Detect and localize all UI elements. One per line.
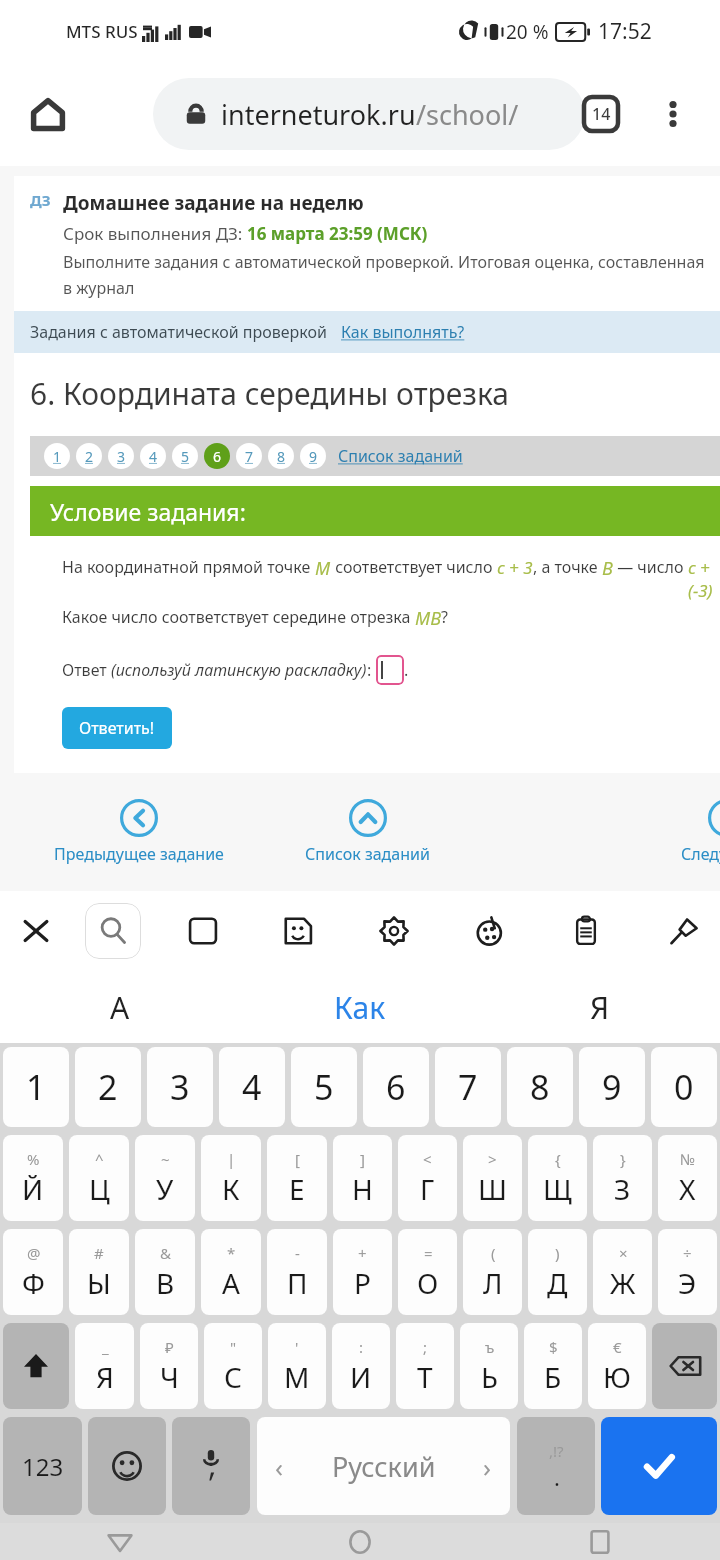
button[interactable]: Recents xyxy=(480,1523,720,1560)
staticText: 17:52 xyxy=(598,17,652,46)
button[interactable]: Как выполнять? xyxy=(341,321,465,343)
staticText: % xyxy=(27,1149,40,1169)
button[interactable]: : xyxy=(332,1323,390,1409)
button[interactable]: interneturok.ru xyxy=(153,78,585,150)
button[interactable]: 5 xyxy=(172,443,198,469)
button[interactable]: ; xyxy=(396,1323,454,1409)
button[interactable]: ) xyxy=(528,1229,587,1315)
button[interactable]: 7 xyxy=(435,1047,501,1127)
staticText: М xyxy=(284,1358,310,1396)
button[interactable]: ъ xyxy=(460,1323,518,1409)
button[interactable]: 1 xyxy=(44,443,70,469)
button[interactable]: Shift xyxy=(3,1323,69,1409)
button[interactable]: Я xyxy=(480,971,720,1043)
button[interactable]: 7 xyxy=(236,443,262,469)
button[interactable]: ^ xyxy=(69,1135,129,1221)
button[interactable]: Settings xyxy=(366,903,422,959)
button[interactable]: Clipboard xyxy=(558,903,614,959)
button[interactable]: Pin xyxy=(655,903,711,959)
button[interactable]: Stickers xyxy=(270,903,326,959)
staticText: А xyxy=(222,1264,240,1302)
button[interactable]: Themes xyxy=(462,903,518,959)
button[interactable]: € xyxy=(588,1323,646,1409)
button[interactable]: 6 xyxy=(363,1047,429,1127)
button[interactable]: Список заданий xyxy=(305,799,430,865)
button[interactable]: # xyxy=(69,1229,129,1315)
button[interactable]: Emoji xyxy=(88,1417,166,1515)
button[interactable]: = xyxy=(398,1229,457,1315)
button[interactable]: + xyxy=(333,1229,392,1315)
staticText: B xyxy=(602,556,613,581)
button[interactable]: × xyxy=(593,1229,652,1315)
button[interactable]: More options xyxy=(646,87,700,141)
button[interactable]: 1 xyxy=(3,1047,69,1127)
button[interactable]: ,!? xyxy=(517,1417,595,1515)
button[interactable]: _ xyxy=(75,1323,134,1409)
button[interactable]: Предыдущее задание xyxy=(54,799,224,865)
button[interactable]: { xyxy=(528,1135,587,1221)
button[interactable]: Следующее xyxy=(681,799,720,865)
staticText: | xyxy=(227,1149,236,1169)
staticText: € xyxy=(613,1337,622,1357)
staticText: 3 xyxy=(117,447,126,466)
button[interactable]: Search xyxy=(85,903,141,959)
staticText: Й xyxy=(22,1170,44,1208)
staticText: Условие задания: xyxy=(50,496,246,527)
button[interactable]: [ xyxy=(267,1135,327,1221)
staticText: А xyxy=(110,987,130,1028)
button[interactable]: 5 xyxy=(291,1047,357,1127)
staticText: З xyxy=(614,1170,631,1208)
button[interactable]: 123 xyxy=(3,1417,82,1515)
button[interactable]: $ xyxy=(524,1323,582,1409)
staticText: Как xyxy=(334,987,386,1028)
button[interactable]: ' xyxy=(268,1323,326,1409)
button[interactable]: А xyxy=(0,971,240,1043)
button[interactable]: Back xyxy=(0,1523,240,1560)
button[interactable]: 9 xyxy=(300,443,326,469)
button[interactable]: ÷ xyxy=(658,1229,717,1315)
button[interactable]: % xyxy=(3,1135,63,1221)
button[interactable]: ( xyxy=(463,1229,522,1315)
button[interactable]: Ответить! xyxy=(62,707,172,749)
button[interactable]: } xyxy=(593,1135,652,1221)
button[interactable]: Как xyxy=(240,971,480,1043)
button[interactable]: Backspace xyxy=(652,1323,717,1409)
button[interactable]: Home xyxy=(18,84,78,144)
button[interactable]: 3 xyxy=(108,443,134,469)
button[interactable]: 2 xyxy=(76,443,102,469)
button[interactable]: 8 xyxy=(507,1047,573,1127)
button[interactable]: 6 xyxy=(204,443,230,469)
button[interactable]: | xyxy=(201,1135,261,1221)
button[interactable]: Tabs xyxy=(574,87,628,141)
button[interactable]: Home xyxy=(240,1523,480,1560)
staticText: П xyxy=(287,1264,308,1302)
button[interactable]: 2 xyxy=(75,1047,141,1127)
button[interactable]: * xyxy=(201,1229,261,1315)
button[interactable]: ~ xyxy=(135,1135,195,1221)
button[interactable]: 4 xyxy=(219,1047,285,1127)
staticText: Е xyxy=(289,1170,305,1208)
button[interactable]: @ xyxy=(3,1229,63,1315)
button[interactable]: & xyxy=(135,1229,195,1315)
button[interactable]: 0 xyxy=(651,1047,717,1127)
button[interactable]: 4 xyxy=(140,443,166,469)
button[interactable]: GIF xyxy=(175,903,231,959)
button[interactable]: > xyxy=(463,1135,522,1221)
button[interactable]: № xyxy=(658,1135,717,1221)
button[interactable]: " xyxy=(204,1323,262,1409)
button[interactable]: Close xyxy=(8,903,64,959)
button[interactable]: ₽ xyxy=(140,1323,198,1409)
button[interactable]: Voice input xyxy=(172,1417,250,1515)
button[interactable] xyxy=(376,655,404,685)
button[interactable]: ‹ xyxy=(257,1417,510,1515)
staticText: Список заданий xyxy=(338,445,463,467)
button[interactable]: - xyxy=(267,1229,327,1315)
button[interactable]: Enter xyxy=(601,1417,717,1515)
button[interactable]: 3 xyxy=(147,1047,213,1127)
button[interactable]: < xyxy=(398,1135,457,1221)
button[interactable]: Список заданий xyxy=(338,445,463,467)
staticText: } xyxy=(620,1149,626,1169)
button[interactable]: ] xyxy=(333,1135,392,1221)
button[interactable]: 8 xyxy=(268,443,294,469)
button[interactable]: 9 xyxy=(579,1047,645,1127)
